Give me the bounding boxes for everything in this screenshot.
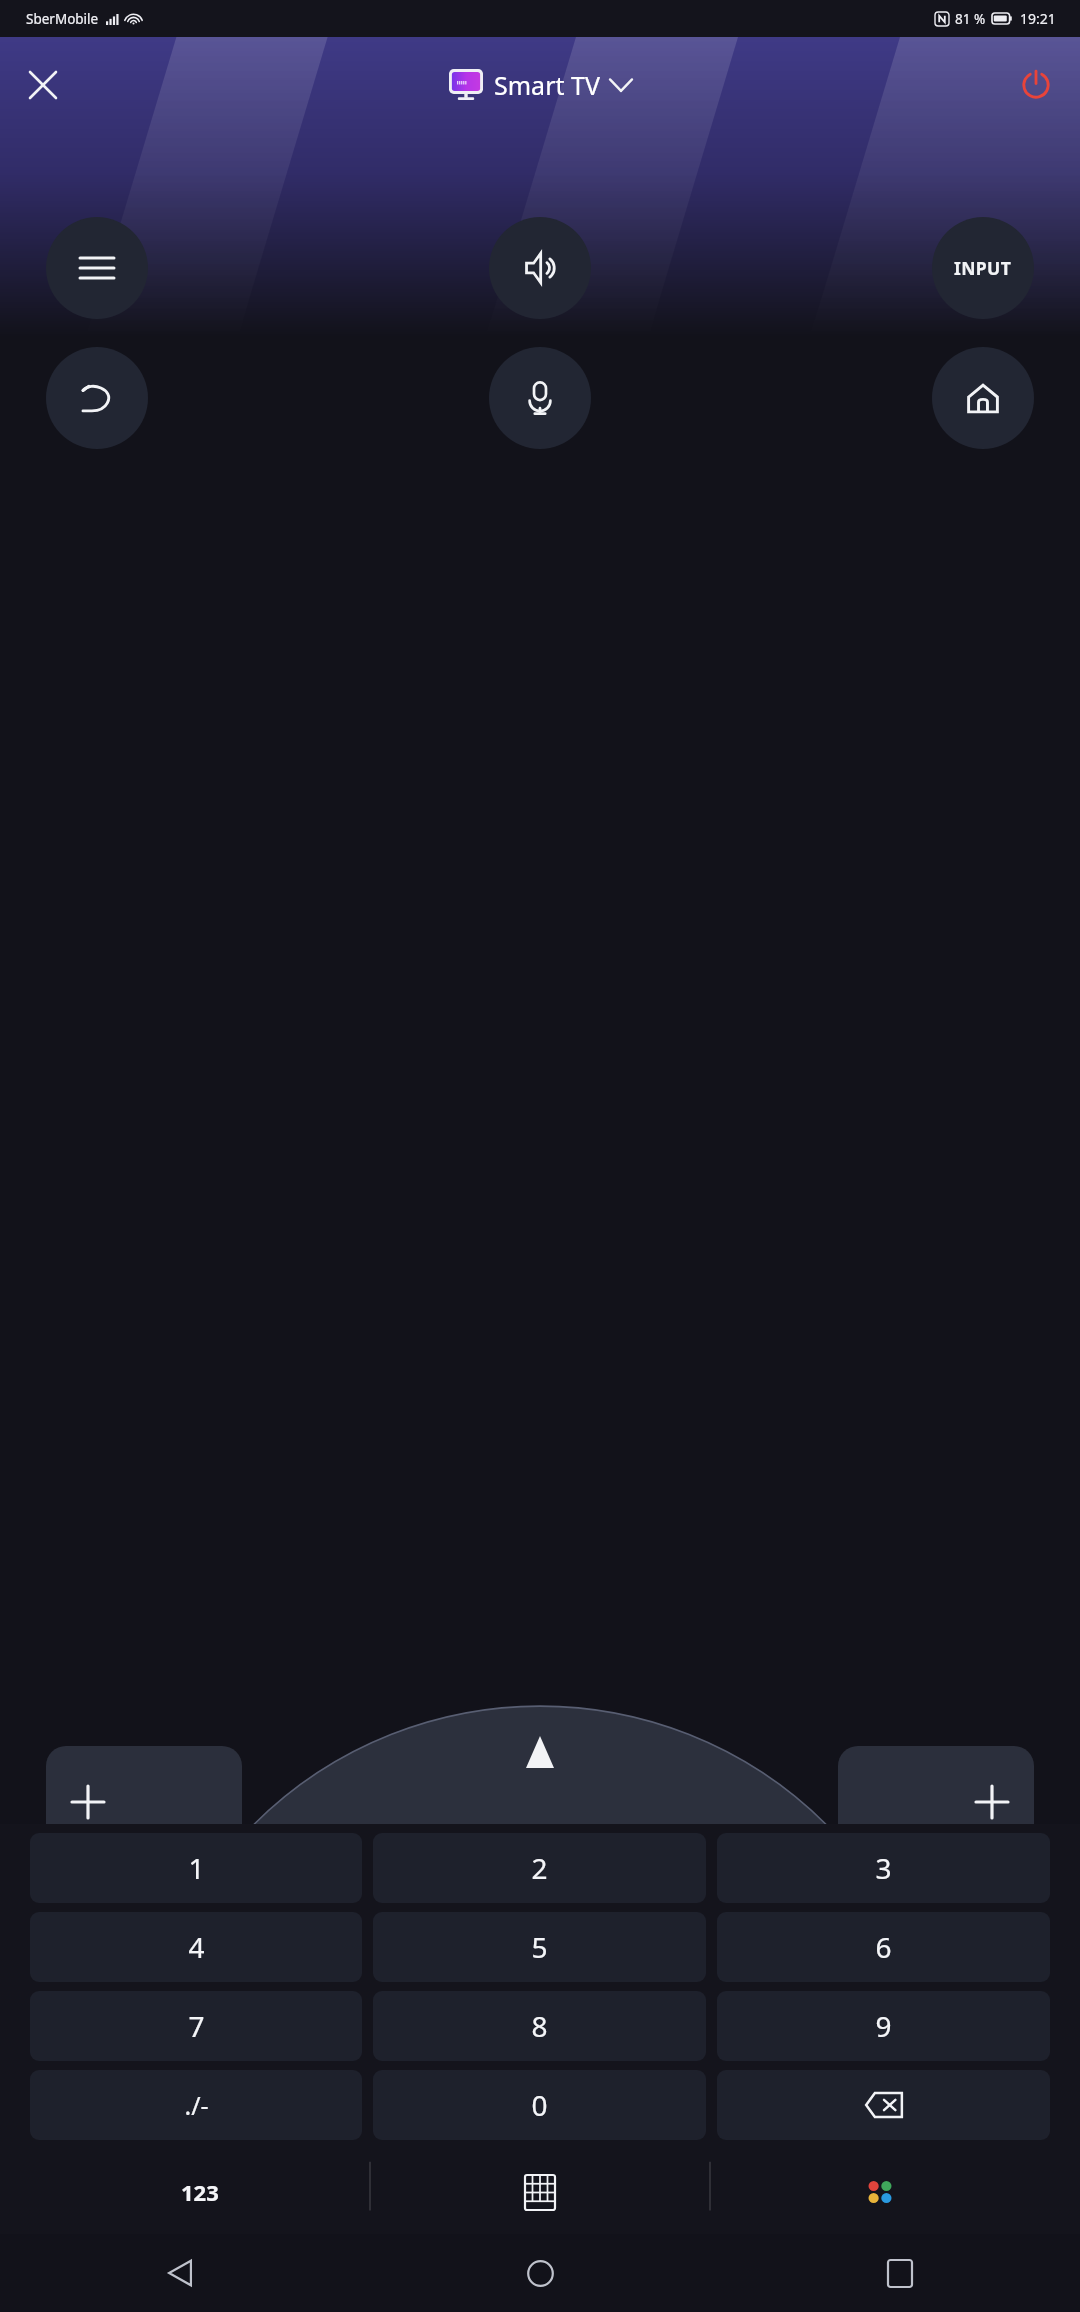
button[interactable]: Close: [14, 56, 72, 114]
button[interactable]: Back: [46, 347, 148, 449]
button[interactable]: 8: [373, 1991, 706, 2061]
button[interactable]: 6: [717, 1912, 1050, 1982]
button[interactable]: 9: [717, 1991, 1050, 2061]
button[interactable]: Volume up: [46, 1746, 242, 1824]
button[interactable]: 4: [30, 1912, 362, 1982]
button[interactable]: 2: [373, 1833, 706, 1903]
button[interactable]: Menu: [46, 217, 148, 319]
button[interactable]: 1: [30, 1833, 362, 1903]
staticText: 0: [531, 2086, 548, 2124]
staticText: 19:21: [1020, 9, 1056, 28]
staticText: 4: [188, 1928, 205, 1966]
button[interactable]: Home: [932, 347, 1034, 449]
button[interactable]: 3: [717, 1833, 1050, 1903]
staticText: 9: [875, 2007, 892, 2045]
staticText: 8: [531, 2007, 548, 2045]
button[interactable]: ./-: [30, 2070, 362, 2140]
staticText: ./-: [184, 2088, 209, 2122]
button[interactable]: Back: [0, 2234, 360, 2312]
staticText: SberMobile: [26, 10, 99, 28]
staticText: 7: [188, 2007, 205, 2045]
staticText: INPUT: [954, 256, 1012, 280]
staticText: Smart TV: [494, 68, 600, 102]
staticText: 81 %: [955, 10, 986, 28]
button[interactable]: 123: [30, 2150, 370, 2234]
button[interactable]: Channel up: [838, 1746, 1034, 1824]
staticText: 6: [875, 1928, 892, 1966]
button[interactable]: 5: [373, 1912, 706, 1982]
button[interactable]: Smart TV: [443, 64, 638, 106]
button[interactable]: 7: [30, 1991, 362, 2061]
button[interactable]: Backspace: [717, 2070, 1050, 2140]
button[interactable]: Volume: [489, 217, 591, 319]
button[interactable]: Recents: [720, 2234, 1080, 2312]
staticText: 123: [181, 2177, 219, 2207]
staticText: 3: [875, 1849, 892, 1887]
button[interactable]: Voice search: [489, 347, 591, 449]
staticText: 1: [188, 1849, 205, 1887]
button[interactable]: Home: [360, 2234, 720, 2312]
staticText: 5: [531, 1928, 548, 1966]
button[interactable]: Up: [0, 1698, 1080, 1824]
staticText: 2: [531, 1849, 548, 1887]
button[interactable]: 0: [373, 2070, 706, 2140]
button[interactable]: Power: [1008, 57, 1064, 113]
button[interactable]: Color buttons: [710, 2150, 1050, 2234]
button[interactable]: INPUT: [932, 217, 1034, 319]
button[interactable]: Keyboard: [370, 2150, 710, 2234]
